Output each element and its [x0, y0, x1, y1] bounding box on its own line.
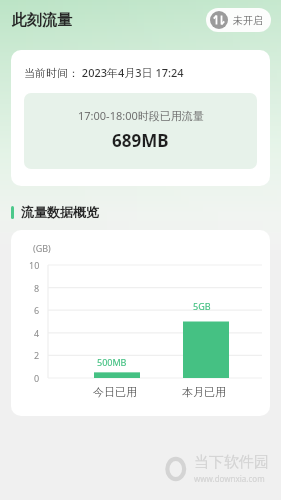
staticText: 0 [34, 372, 40, 384]
staticText: 8 [34, 282, 40, 294]
other: 流量监控未开启 [210, 11, 228, 29]
staticText: 未开启 [233, 14, 263, 27]
staticText: 当下软件园 [194, 453, 269, 472]
staticText: 4 [34, 327, 40, 339]
staticText: www.downxia.com [194, 473, 265, 484]
staticText: 17:00-18:00时段已用流量 [78, 108, 204, 123]
staticText: 2 [34, 349, 40, 361]
staticText: 689MB [112, 129, 169, 152]
button[interactable]: (GB) [11, 230, 270, 416]
staticText: 500MB [97, 356, 127, 368]
staticText: 10 [29, 259, 40, 271]
staticText: 当前时间： 2023年4月3日 17:24 [24, 65, 184, 80]
staticText: 5GB [193, 300, 211, 312]
staticText: 本月已用 [182, 385, 226, 399]
staticText: 今日已用 [93, 385, 137, 399]
button[interactable]: 流量监控未开启 [206, 8, 271, 32]
button[interactable]: 当前时间： 2023年4月3日 17:24 [11, 50, 270, 186]
staticText: (GB) [33, 242, 51, 254]
staticText: 流量数据概览 [21, 204, 99, 220]
staticText: 6 [34, 304, 40, 316]
staticText: 此刻流量 [12, 11, 72, 30]
